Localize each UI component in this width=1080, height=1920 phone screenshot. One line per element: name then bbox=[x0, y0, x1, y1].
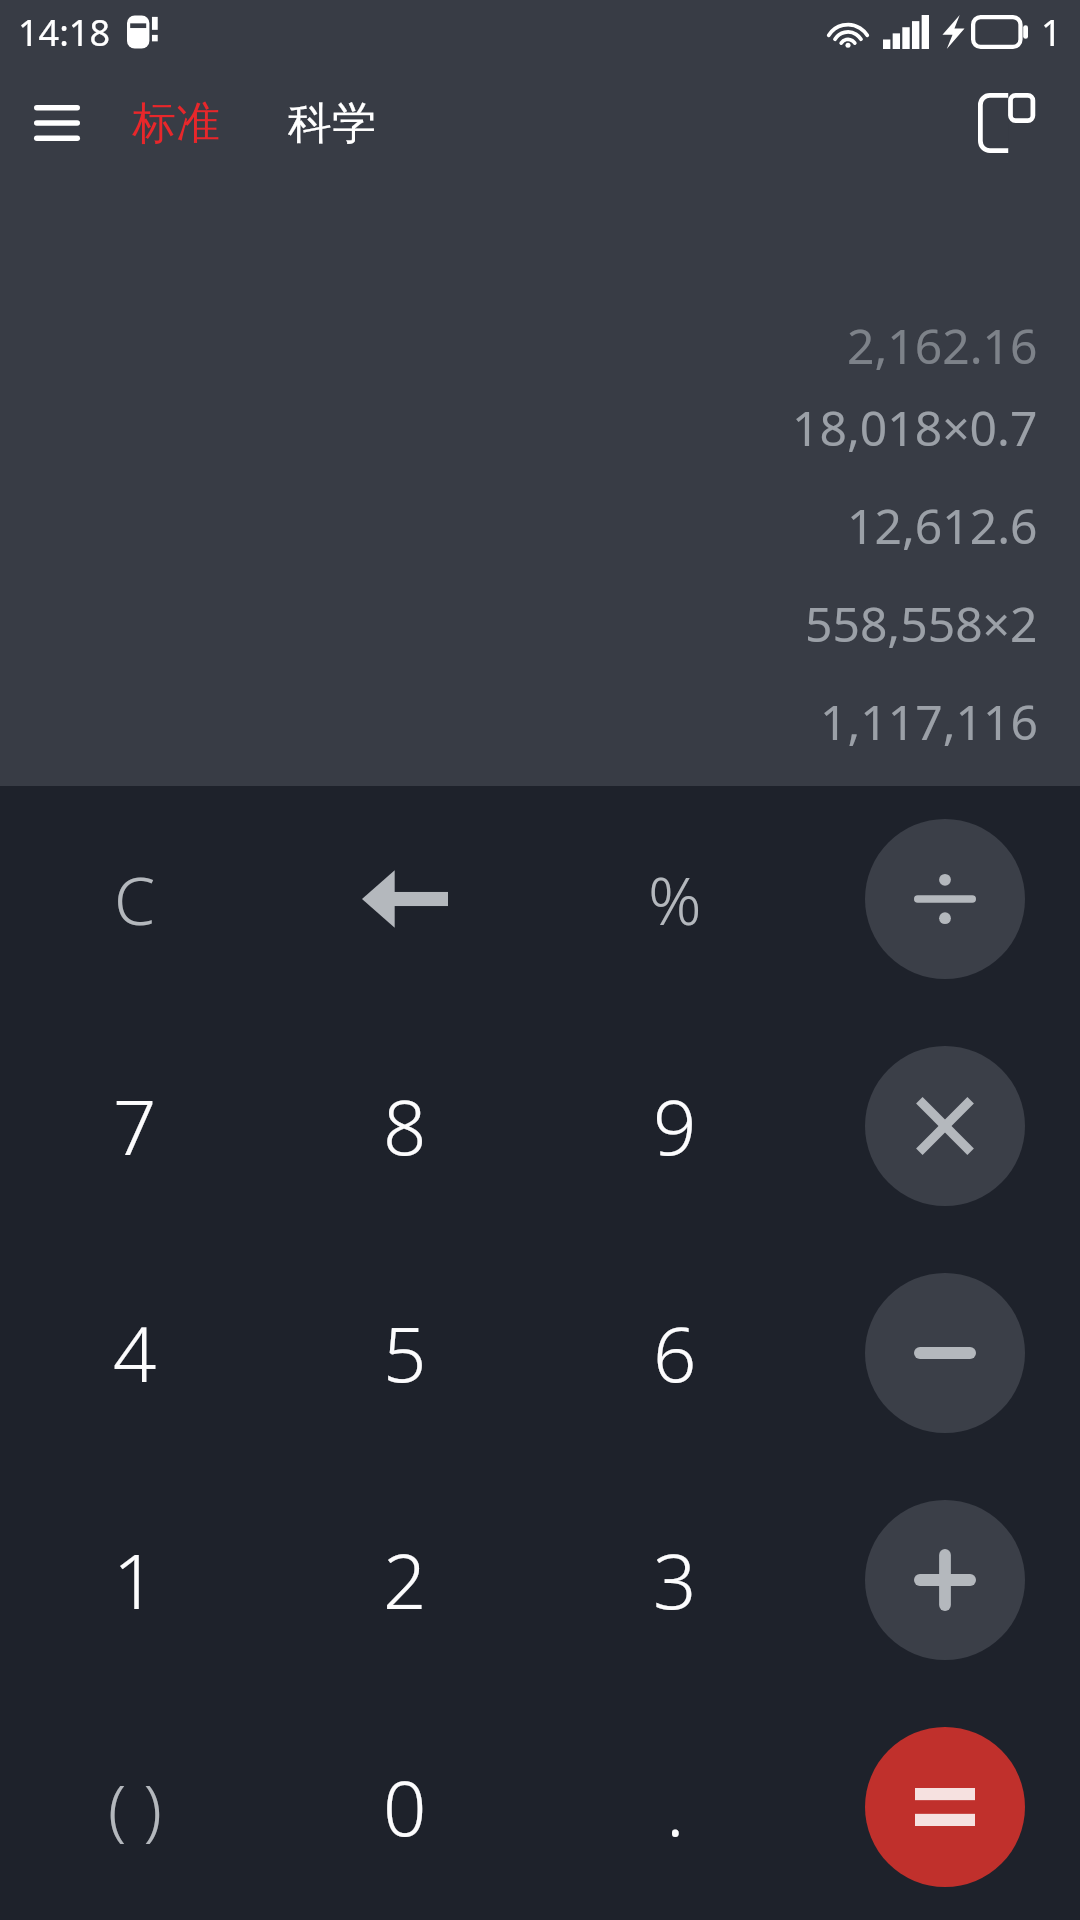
staticText: 标准 bbox=[132, 96, 220, 151]
button[interactable]: 7 bbox=[0, 1012, 270, 1239]
staticText: 科学 bbox=[288, 96, 376, 151]
button[interactable]: 18,018×0.7 bbox=[0, 378, 1038, 476]
button[interactable]: Divide bbox=[865, 819, 1025, 979]
staticText: C bbox=[114, 854, 156, 944]
button[interactable]: 1,117,116 bbox=[0, 672, 1038, 770]
button[interactable]: 1 bbox=[0, 1466, 270, 1693]
staticText: 3 bbox=[653, 1528, 697, 1632]
staticText: 4 bbox=[113, 1301, 157, 1405]
staticText: ( ) bbox=[108, 1762, 162, 1852]
staticText: 6 bbox=[653, 1301, 697, 1405]
staticText: % bbox=[648, 854, 702, 944]
staticText: 14:18 bbox=[18, 8, 111, 57]
button[interactable]: Plus bbox=[865, 1500, 1025, 1660]
staticText: 1,117,116 bbox=[820, 689, 1038, 754]
staticText: 2 bbox=[383, 1528, 427, 1632]
button[interactable]: Menu bbox=[20, 86, 94, 160]
staticText: 2,162.16 bbox=[847, 313, 1038, 378]
staticText: 18,018×0.7 bbox=[792, 395, 1038, 460]
button[interactable]: Minus bbox=[865, 1273, 1025, 1433]
button[interactable]: 2 bbox=[270, 1466, 540, 1693]
button[interactable]: 0 bbox=[270, 1693, 540, 1920]
staticText: 1 bbox=[113, 1528, 157, 1632]
staticText: 0 bbox=[383, 1755, 427, 1859]
button[interactable]: Backspace bbox=[270, 786, 540, 1012]
button[interactable]: 6 bbox=[540, 1239, 810, 1466]
staticText: 8 bbox=[383, 1074, 427, 1178]
button[interactable]: % bbox=[540, 786, 810, 1012]
staticText: 12,612.6 bbox=[847, 493, 1038, 558]
staticText: 5 bbox=[383, 1301, 427, 1405]
button[interactable]: 9 bbox=[540, 1012, 810, 1239]
button[interactable]: 8 bbox=[270, 1012, 540, 1239]
button[interactable]: 4 bbox=[0, 1239, 270, 1466]
staticText: 1 bbox=[1041, 8, 1062, 57]
button[interactable]: ( ) bbox=[0, 1693, 270, 1920]
button[interactable]: . bbox=[540, 1693, 810, 1920]
button[interactable]: 558,558×2 bbox=[0, 574, 1038, 672]
button[interactable]: Multiply bbox=[865, 1046, 1025, 1206]
button[interactable]: 3 bbox=[540, 1466, 810, 1693]
button[interactable]: Split screen bbox=[956, 73, 1056, 173]
staticText: . bbox=[666, 1755, 685, 1859]
button[interactable]: C bbox=[0, 786, 270, 1012]
staticText: 7 bbox=[113, 1074, 157, 1178]
button[interactable]: 12,612.6 bbox=[0, 476, 1038, 574]
button[interactable]: 5 bbox=[270, 1239, 540, 1466]
button[interactable]: Equals bbox=[865, 1727, 1025, 1887]
staticText: 9 bbox=[653, 1074, 697, 1178]
button[interactable]: 科学 bbox=[276, 82, 388, 165]
staticText: 558,558×2 bbox=[805, 591, 1038, 656]
button[interactable]: 标准 bbox=[120, 82, 232, 165]
